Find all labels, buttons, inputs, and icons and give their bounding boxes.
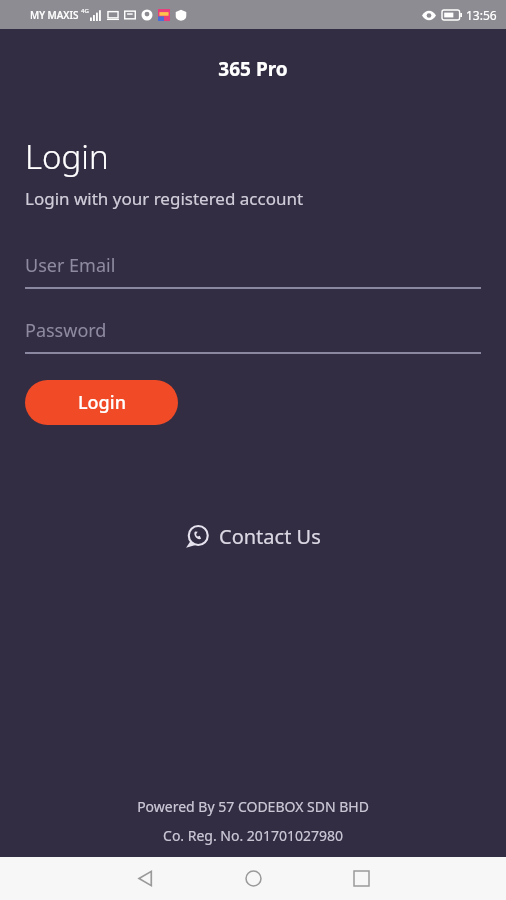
button[interactable]: Login <box>25 380 178 425</box>
button[interactable]: Password <box>25 318 481 354</box>
staticText: MY MAXIS <box>30 8 79 22</box>
button[interactable]: Recents <box>331 857 391 900</box>
staticText: 365 Pro <box>0 56 506 82</box>
staticText: Co. Reg. No. 201701027980 <box>0 826 506 845</box>
staticText: Login with your registered account <box>25 187 304 210</box>
staticText: Password <box>25 318 107 343</box>
staticText: 13:56 <box>466 7 497 23</box>
staticText: User Email <box>25 253 116 278</box>
staticText: 4G <box>81 7 89 15</box>
staticText: Login <box>78 390 126 415</box>
button[interactable]: Back <box>115 857 175 900</box>
staticText: Login <box>25 134 109 179</box>
staticText: Contact Us <box>219 523 321 550</box>
staticText: Powered By 57 CODEBOX SDN BHD <box>0 797 506 816</box>
button[interactable]: Home <box>223 857 283 900</box>
other: WhatsApp Contact Us <box>185 524 210 549</box>
button[interactable]: WhatsApp Contact Us <box>0 523 506 550</box>
button[interactable]: User Email <box>25 253 481 289</box>
